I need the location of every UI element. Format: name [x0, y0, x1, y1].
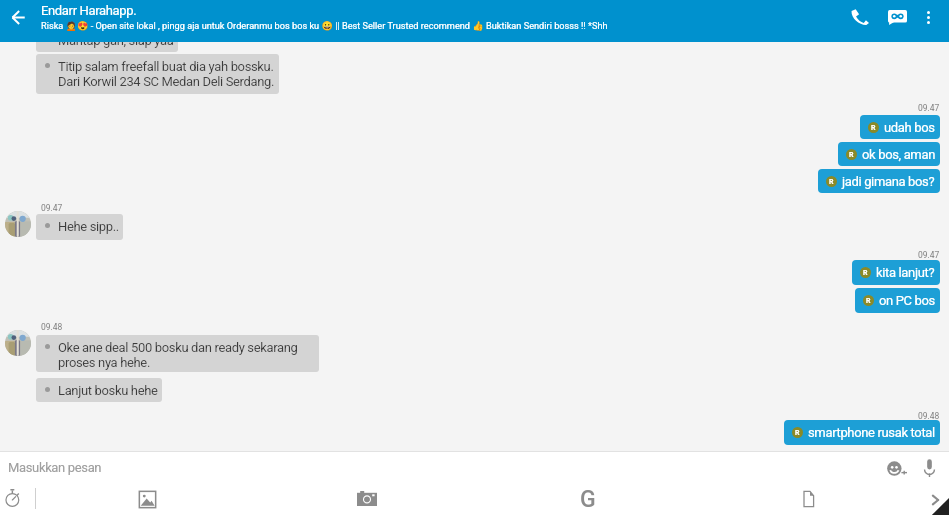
staticText: Masukkan pesan — [8, 460, 102, 475]
button[interactable]: More actions — [920, 480, 949, 515]
staticText: 09.48 — [41, 322, 63, 332]
button[interactable]: Back — [0, 0, 38, 38]
staticText: udah bos — [884, 120, 935, 135]
staticText: G — [580, 486, 596, 513]
button[interactable]: Oke ane deal 500 bosku dan ready sekaran… — [36, 335, 319, 372]
staticText: Titip salam freefall buat dia yah bossku… — [58, 59, 275, 89]
staticText: on PC bos — [879, 293, 935, 308]
staticText: Riska 🙍😍 - Open site lokal , pingg aja u… — [41, 20, 608, 31]
staticText: R — [795, 429, 800, 437]
staticText: Mantap gan, siap yaa — [58, 42, 174, 48]
button[interactable]: Titip salam freefall buat dia yah bossku… — [36, 54, 279, 94]
button[interactable]: More options — [913, 0, 945, 42]
staticText: R — [866, 297, 871, 305]
button[interactable]: R — [838, 142, 940, 166]
button[interactable]: Camera — [350, 480, 384, 515]
staticText: R — [849, 151, 854, 159]
button[interactable]: Insert emoji — [881, 452, 911, 480]
staticText: Hehe sipp.. — [58, 219, 119, 234]
button[interactable]: Lanjut bosku hehe — [36, 378, 162, 402]
staticText: R — [863, 269, 868, 277]
button[interactable]: R — [784, 420, 940, 445]
staticText: 09.47 — [918, 103, 940, 113]
staticText: smartphone rusak total — [808, 425, 935, 440]
staticText: R — [829, 178, 834, 186]
staticText: Oke ane deal 500 bosku dan ready sekaran… — [58, 340, 298, 370]
button[interactable]: Voice message — [879, 0, 916, 42]
button[interactable]: Voice input — [914, 452, 942, 480]
staticText: ok bos, aman — [862, 147, 935, 162]
button[interactable]: Mantap gan, siap yaa — [36, 42, 178, 52]
staticText: Lanjut bosku hehe — [58, 383, 158, 398]
staticText: Endarr Harahapp. — [41, 3, 137, 18]
button[interactable]: Timer — [0, 480, 34, 515]
button[interactable]: Hehe sipp.. — [36, 214, 123, 240]
button[interactable]: R — [852, 260, 940, 285]
button[interactable]: R — [818, 169, 940, 193]
staticText: R — [871, 124, 876, 132]
button[interactable]: Gallery — [130, 480, 164, 515]
button[interactable]: Google search — [571, 480, 605, 515]
staticText: jadi gimana bos? — [842, 174, 935, 189]
button[interactable]: Attach file — [793, 480, 827, 515]
staticText: 09.47 — [918, 250, 940, 260]
button[interactable]: Call — [842, 0, 880, 42]
button[interactable]: R — [855, 288, 940, 313]
staticText: 09.48 — [918, 411, 940, 421]
staticText: 09.47 — [41, 203, 63, 213]
button[interactable]: R — [860, 115, 940, 139]
staticText: kita lanjut? — [876, 265, 935, 280]
